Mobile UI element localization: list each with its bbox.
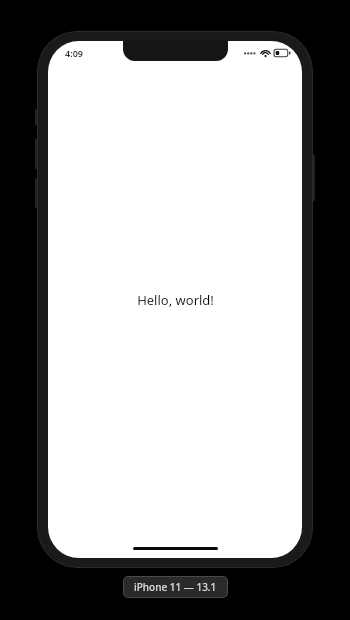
staticText: iPhone 11 — 13.1 [134, 580, 217, 594]
staticText: 4:09 [65, 47, 83, 59]
button[interactable]: iPhone 11 — 13.1 [123, 576, 228, 598]
staticText: Hello, world! [137, 291, 214, 309]
